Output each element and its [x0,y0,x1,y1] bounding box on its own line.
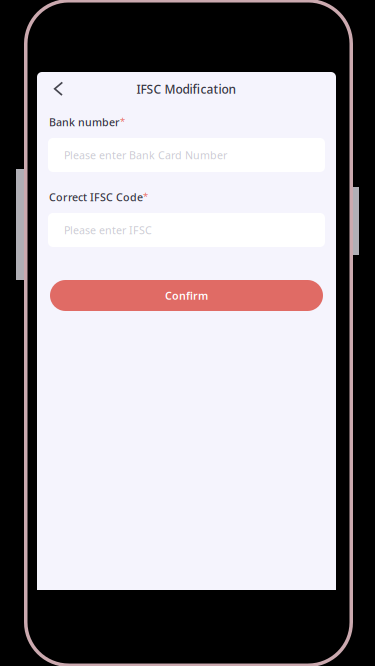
staticText: Please enter IFSC [64,223,152,237]
button[interactable]: Confirm [50,280,323,311]
staticText: * [143,190,148,202]
staticText: Correct IFSC Code [49,190,143,204]
staticText: IFSC Modification [136,81,236,97]
staticText: Please enter Bank Card Number [64,148,227,162]
staticText: Confirm [165,288,208,303]
staticText: * [120,115,125,127]
button[interactable]: Please enter Bank Card Number [48,138,325,172]
button[interactable]: Please enter IFSC [48,213,325,247]
button[interactable]: Back [37,72,80,106]
staticText: Bank number [49,115,120,129]
